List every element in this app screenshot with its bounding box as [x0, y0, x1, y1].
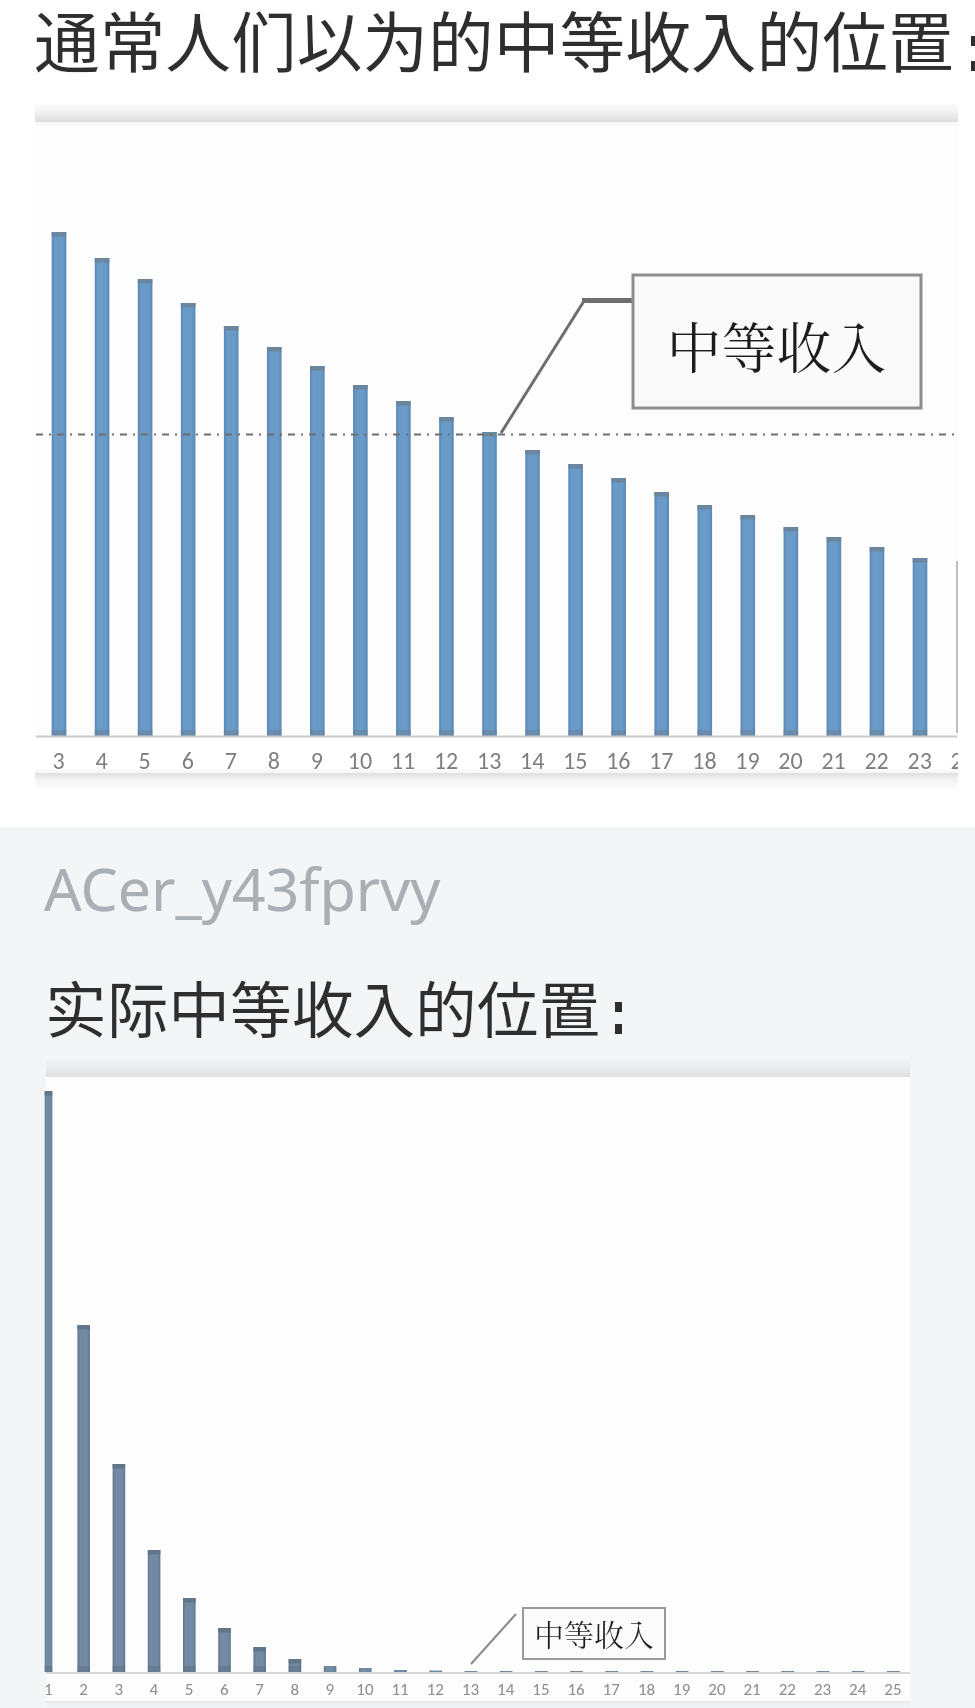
button[interactable]: ACer_y43fprvy 实际中等收入的位置：收入分布图 [0, 827, 975, 1708]
button[interactable]: 通常人们以为的中等收入的位置：收入分布图 [0, 0, 975, 827]
